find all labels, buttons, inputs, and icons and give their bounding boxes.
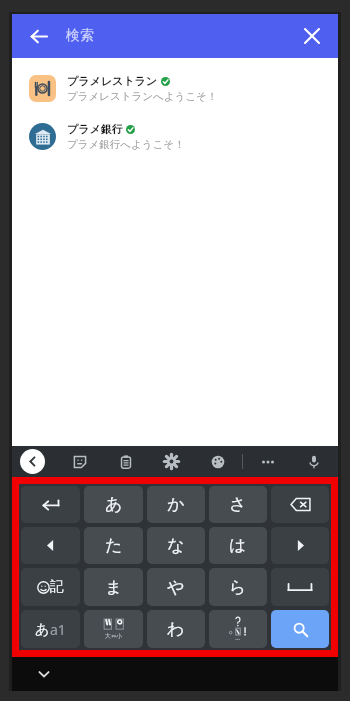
button[interactable]: プラメ銀行 [12,112,338,160]
button[interactable]: さ [209,486,267,523]
staticText: や [167,577,185,598]
staticText: か [167,494,185,515]
button[interactable]: Emoji and symbols [21,568,80,606]
button[interactable]: な [147,527,205,564]
staticText: プラメ銀行へようこそ！ [67,138,185,151]
button[interactable]: あ [84,486,143,523]
staticText: た [105,535,123,556]
staticText: ら [229,577,247,598]
button[interactable]: Move cursor right [271,527,329,564]
button[interactable]: Dakuten and small kana [84,610,143,648]
button[interactable]: Themes [205,449,230,474]
button[interactable]: プラメレストラン [12,64,338,112]
button[interactable]: Voice input [301,449,326,474]
button[interactable]: た [84,527,143,564]
staticText: プラメレストランへようこそ！ [67,90,218,103]
button[interactable]: Close [297,21,327,51]
button[interactable]: Back [20,449,45,474]
button[interactable]: Switch input mode [21,610,80,648]
button[interactable]: Enter [21,486,80,523]
staticText: a1 [50,620,66,639]
staticText: ま [105,577,123,598]
staticText: さ [229,494,247,515]
staticText: な [167,535,185,556]
button[interactable]: わ [147,610,205,648]
button[interactable]: Hide keyboard [32,662,56,686]
staticText: は [229,535,247,556]
staticText: あ [105,494,123,515]
button[interactable]: Search [271,610,329,648]
button[interactable]: ら [209,568,267,606]
button[interactable]: ま [84,568,143,606]
staticText: 記 [50,578,64,596]
button[interactable]: Delete [271,486,329,523]
button[interactable]: Punctuation [209,610,267,648]
staticText: あ [35,621,50,639]
button[interactable]: More options [255,449,280,474]
button[interactable]: Space [271,568,329,606]
button[interactable]: は [209,527,267,564]
button[interactable]: Settings [159,449,184,474]
button[interactable]: か [147,486,205,523]
staticText: 大⇔小 [105,632,123,640]
staticText: わ [167,619,185,640]
button[interactable]: Clipboard [113,449,138,474]
button[interactable]: Stickers [67,449,92,474]
staticText: プラメレストラン [67,74,158,88]
button[interactable]: Move cursor left [21,527,80,564]
button[interactable]: や [147,568,205,606]
staticText: プラメ銀行 [67,122,123,136]
button[interactable]: Back [22,20,54,52]
staticText: 検索 [66,27,94,45]
